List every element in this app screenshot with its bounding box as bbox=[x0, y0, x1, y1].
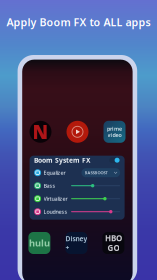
staticText: video bbox=[107, 131, 121, 138]
button[interactable]: Disney Plus bbox=[65, 232, 87, 254]
button[interactable]: Netflix bbox=[29, 121, 51, 143]
button[interactable]: Boom System FX toggle bbox=[109, 157, 120, 163]
staticText: Disney+ bbox=[65, 234, 87, 252]
button[interactable]: YouTube Music bbox=[66, 121, 88, 143]
staticText: Equalizer bbox=[44, 169, 66, 176]
staticText: HBO bbox=[105, 233, 122, 243]
staticText: Apply Boom FX to ALL apps bbox=[6, 15, 150, 29]
button[interactable]: Hulu bbox=[28, 232, 50, 254]
button[interactable]: Prime Video bbox=[103, 121, 125, 143]
button[interactable]: Bass bbox=[30, 179, 125, 192]
staticText: GO bbox=[107, 242, 119, 253]
staticText: N bbox=[32, 119, 48, 144]
button[interactable]: Equalizer bbox=[30, 166, 125, 179]
staticText: Bass bbox=[44, 182, 56, 189]
staticText: prime bbox=[107, 125, 122, 132]
staticText: Loudness bbox=[44, 208, 68, 215]
button[interactable]: Virtualizer bbox=[30, 192, 125, 205]
staticText: Boom System FX bbox=[34, 156, 90, 165]
staticText: Virtualizer bbox=[44, 195, 68, 202]
staticText: BASSBOOST bbox=[84, 170, 107, 175]
button[interactable]: Loudness bbox=[30, 205, 125, 218]
button[interactable]: HBO GO bbox=[102, 232, 124, 254]
staticText: hulu bbox=[29, 237, 50, 249]
